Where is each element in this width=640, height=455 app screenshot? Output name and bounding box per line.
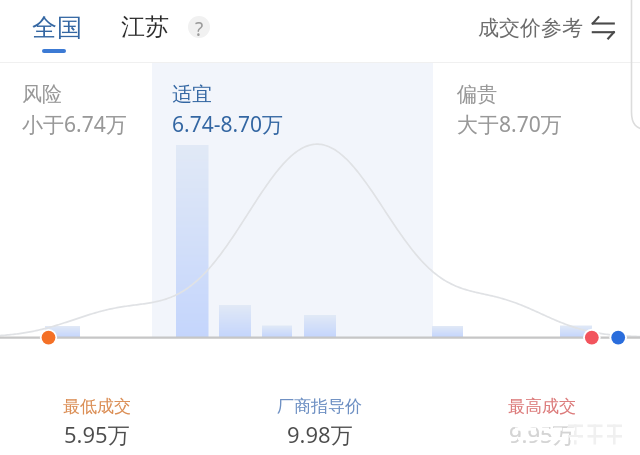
staticText: ? xyxy=(195,16,204,38)
staticText: 大于8.70万 xyxy=(457,110,562,139)
staticText: 6.74-8.70万 xyxy=(172,110,284,139)
staticText: 5.95万 xyxy=(64,419,130,449)
staticText: 风险 xyxy=(22,82,62,107)
button[interactable]: 厂商指导价 xyxy=(223,396,416,454)
staticText: 厂商指导价 xyxy=(277,396,362,417)
staticText: 9.95万 xyxy=(509,419,575,449)
staticText: 江苏 xyxy=(121,12,169,42)
other: 切换 xyxy=(592,13,615,43)
staticText: 成交价参考 xyxy=(478,15,583,41)
button[interactable]: 全国 xyxy=(22,0,86,62)
staticText: 最高成交 xyxy=(508,396,576,417)
button[interactable]: 说明 xyxy=(188,16,210,38)
staticText: 小于6.74万 xyxy=(22,110,127,139)
button[interactable]: 成交价参考 xyxy=(478,10,615,46)
staticText: 偏贵 xyxy=(457,82,497,107)
staticText: 9.98万 xyxy=(287,419,353,449)
staticText: 最低成交 xyxy=(63,396,131,417)
button[interactable]: 最高成交 xyxy=(445,396,638,454)
button[interactable]: 江苏 xyxy=(113,0,175,55)
staticText: 适宜 xyxy=(172,82,212,107)
staticText: 全国 xyxy=(32,12,82,43)
button[interactable]: 最低成交 xyxy=(0,396,193,454)
